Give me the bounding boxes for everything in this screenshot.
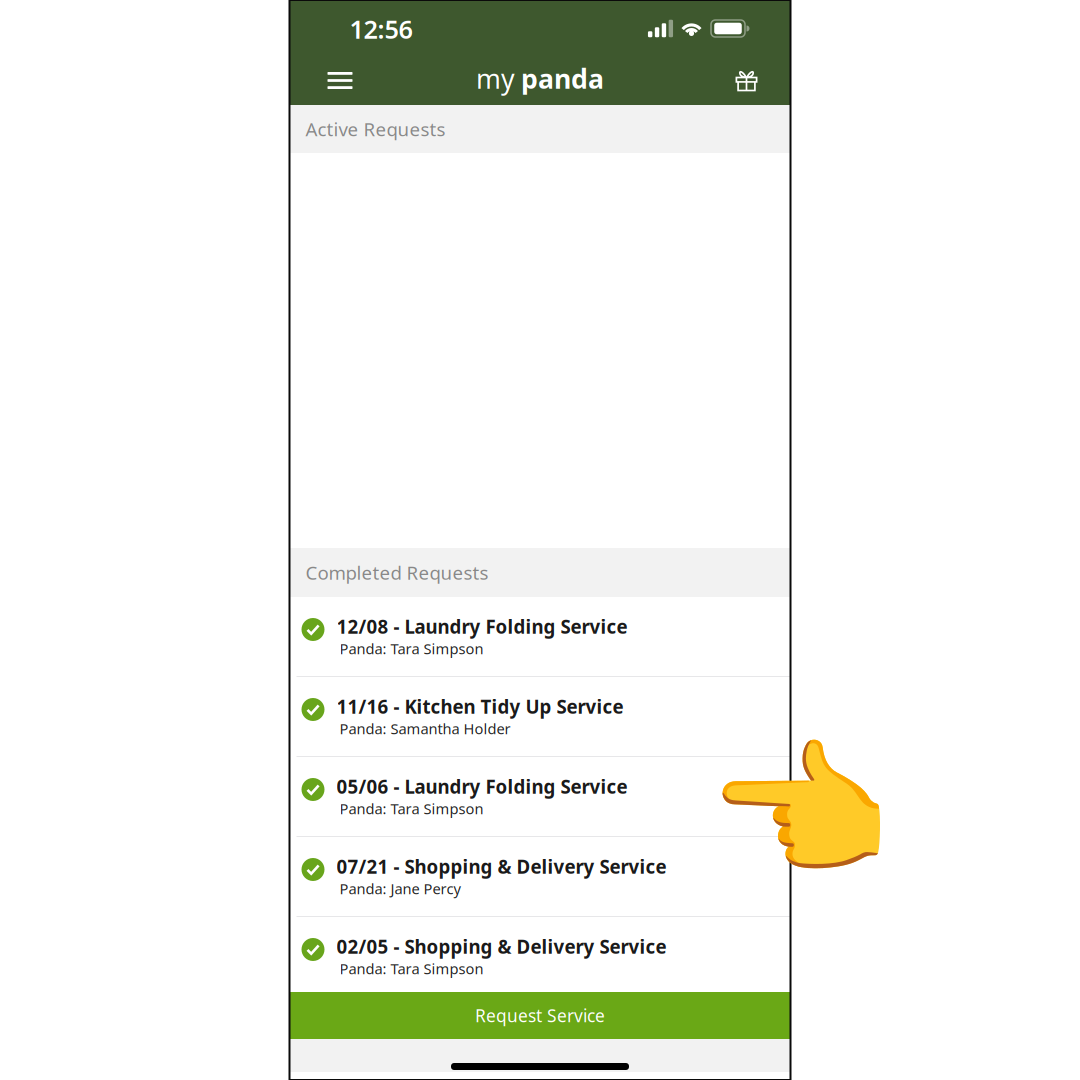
staticText: 05/06 - Laundry Folding Service <box>336 774 627 799</box>
button[interactable]: 07/21 - Shopping & Delivery Service <box>289 837 790 917</box>
staticText: Panda: Tara Simpson <box>339 639 483 658</box>
staticText: my <box>476 61 515 96</box>
staticText: 07/21 - Shopping & Delivery Service <box>336 854 666 879</box>
staticText: Active Requests <box>305 117 445 141</box>
staticText: 12/08 - Laundry Folding Service <box>336 614 627 639</box>
button[interactable]: Rewards <box>721 56 790 105</box>
staticText: 02/05 - Shopping & Delivery Service <box>336 934 666 959</box>
staticText: Panda: Jane Percy <box>339 879 460 898</box>
staticText: Completed Requests <box>305 560 488 585</box>
button[interactable]: 05/06 - Laundry Folding Service <box>289 757 790 837</box>
staticText: 👈 <box>706 727 892 898</box>
staticText: Panda: Tara Simpson <box>339 959 483 978</box>
button[interactable]: 12/08 - Laundry Folding Service <box>289 597 790 677</box>
staticText: Panda: Tara Simpson <box>339 799 483 818</box>
button[interactable]: 02/05 - Shopping & Delivery Service <box>289 917 790 992</box>
button[interactable]: 11/16 - Kitchen Tidy Up Service <box>289 677 790 757</box>
staticText: 12:56 <box>349 12 412 46</box>
staticText: 11/16 - Kitchen Tidy Up Service <box>336 694 623 719</box>
staticText: Panda: Samantha Holder <box>339 719 510 738</box>
staticText: Request Service <box>475 1004 605 1027</box>
staticText: panda <box>521 61 604 96</box>
button[interactable]: Menu <box>289 56 366 105</box>
button[interactable]: Request Service <box>289 992 790 1039</box>
